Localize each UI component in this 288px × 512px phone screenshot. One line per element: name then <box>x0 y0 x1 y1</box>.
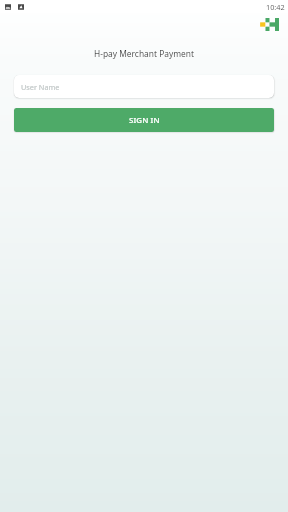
staticText: User Name <box>21 82 60 92</box>
button[interactable]: SIGN IN <box>14 108 274 132</box>
other: File <box>18 4 24 10</box>
other: H-pay logo <box>261 18 279 31</box>
staticText: 10:42 <box>266 2 285 12</box>
button[interactable]: User Name <box>14 75 274 98</box>
staticText: H-pay Merchant Payment <box>0 48 288 59</box>
staticText: SIGN IN <box>129 115 160 126</box>
other: Screenshot <box>5 4 11 10</box>
